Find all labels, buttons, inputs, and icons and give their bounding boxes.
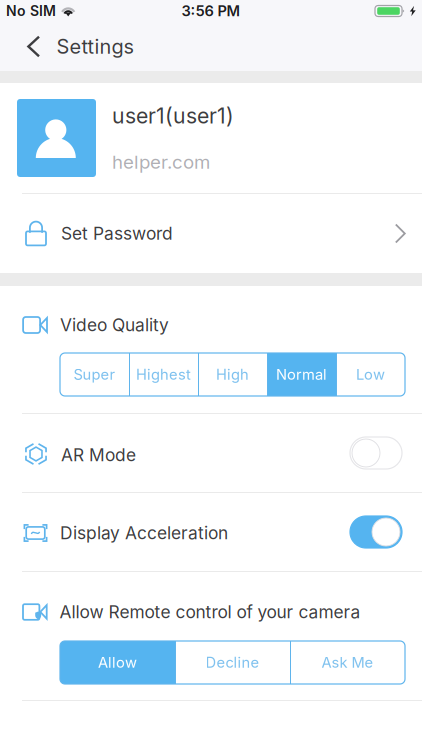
button[interactable]: High (198, 353, 267, 396)
staticText: user1(user1) (112, 103, 234, 129)
staticText: Low (356, 366, 385, 383)
staticText: High (216, 366, 249, 383)
staticText: Decline (205, 654, 259, 671)
staticText: Video Quality (60, 314, 169, 335)
button[interactable]: Decline (175, 641, 290, 684)
button[interactable]: Set Password (0, 194, 422, 273)
staticText: No SIM (6, 2, 56, 19)
staticText: Allow (98, 654, 137, 671)
staticText: Display Acceleration (60, 522, 228, 543)
staticText: Super (73, 366, 115, 383)
button[interactable]: Toggle off (350, 437, 402, 469)
button[interactable]: Allow (60, 641, 175, 684)
staticText: Allow Remote control of your camera (60, 601, 361, 622)
button[interactable]: Normal (267, 353, 336, 396)
button[interactable]: Highest (129, 353, 198, 396)
button[interactable]: Settings (0, 22, 151, 71)
staticText: Ask Me (321, 654, 373, 671)
staticText: 3:56 PM (181, 2, 240, 20)
staticText: AR Mode (61, 444, 136, 465)
button[interactable]: Super (60, 353, 129, 396)
button[interactable]: Low (336, 353, 405, 396)
button[interactable]: Ask Me (290, 641, 405, 684)
staticText: helper.com (112, 151, 210, 173)
staticText: Highest (136, 366, 191, 383)
staticText: Settings (56, 34, 133, 59)
button[interactable]: Toggle on (350, 516, 402, 548)
staticText: Set Password (61, 223, 173, 244)
staticText: Normal (276, 366, 327, 383)
